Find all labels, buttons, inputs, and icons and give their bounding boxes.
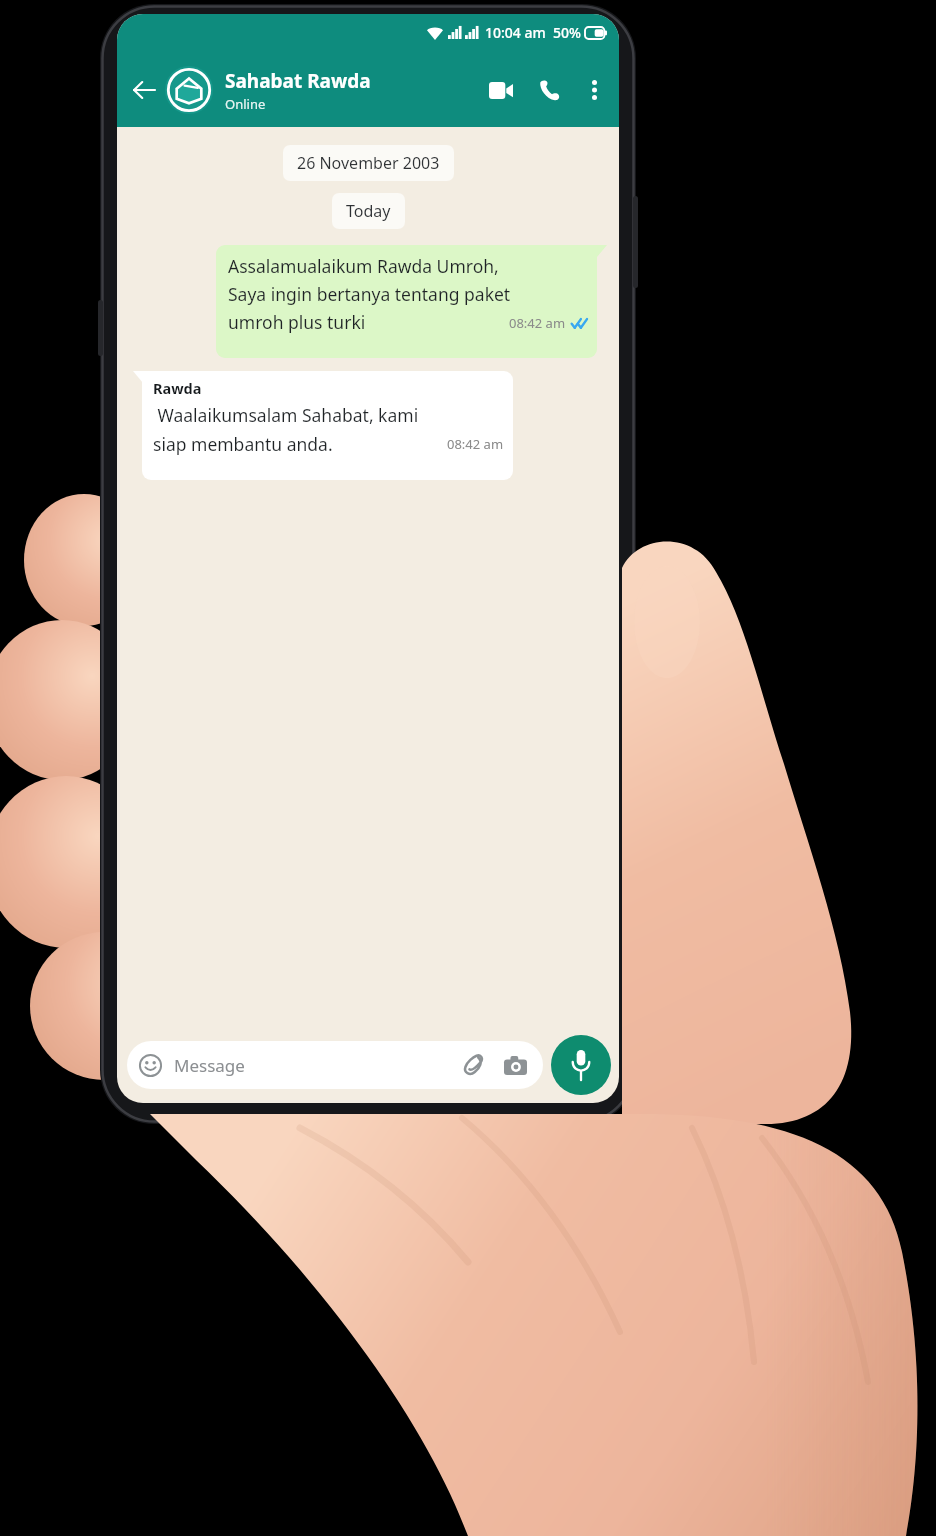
button[interactable]: Back	[125, 71, 163, 109]
button[interactable]: Message	[127, 1041, 543, 1089]
staticText: Message	[174, 1054, 245, 1077]
staticText: 08:42 am	[509, 314, 566, 332]
button[interactable]: Assalamualaikum Rawda Umroh, Saya ingin …	[216, 245, 597, 358]
button[interactable]: Voice message	[551, 1035, 611, 1095]
button[interactable]: More options	[575, 71, 613, 109]
button[interactable]: Video call	[481, 70, 521, 110]
staticText: 50%	[553, 23, 581, 42]
staticText: Rawda	[153, 378, 202, 398]
staticText: 08:42 am	[447, 435, 504, 453]
staticText: Today	[346, 200, 391, 222]
button[interactable]: 26 November 2003	[283, 145, 454, 181]
staticText: 10:04 am	[485, 23, 546, 42]
button[interactable]: Today	[332, 193, 405, 229]
staticText: 26 November 2003	[297, 152, 440, 174]
button[interactable]: Sahabat Rawda	[165, 66, 481, 114]
button[interactable]: Voice call	[529, 70, 569, 110]
staticText: Online	[225, 95, 266, 113]
staticText: Waalaikumsalam Sahabat, kami siap memban…	[153, 403, 419, 456]
button[interactable]: Camera	[499, 1049, 531, 1081]
staticText: Sahabat Rawda	[225, 68, 371, 94]
staticText: Assalamualaikum Rawda Umroh, Saya ingin …	[228, 254, 511, 334]
button[interactable]: Rawda	[142, 371, 513, 480]
button[interactable]: Attach	[457, 1049, 489, 1081]
